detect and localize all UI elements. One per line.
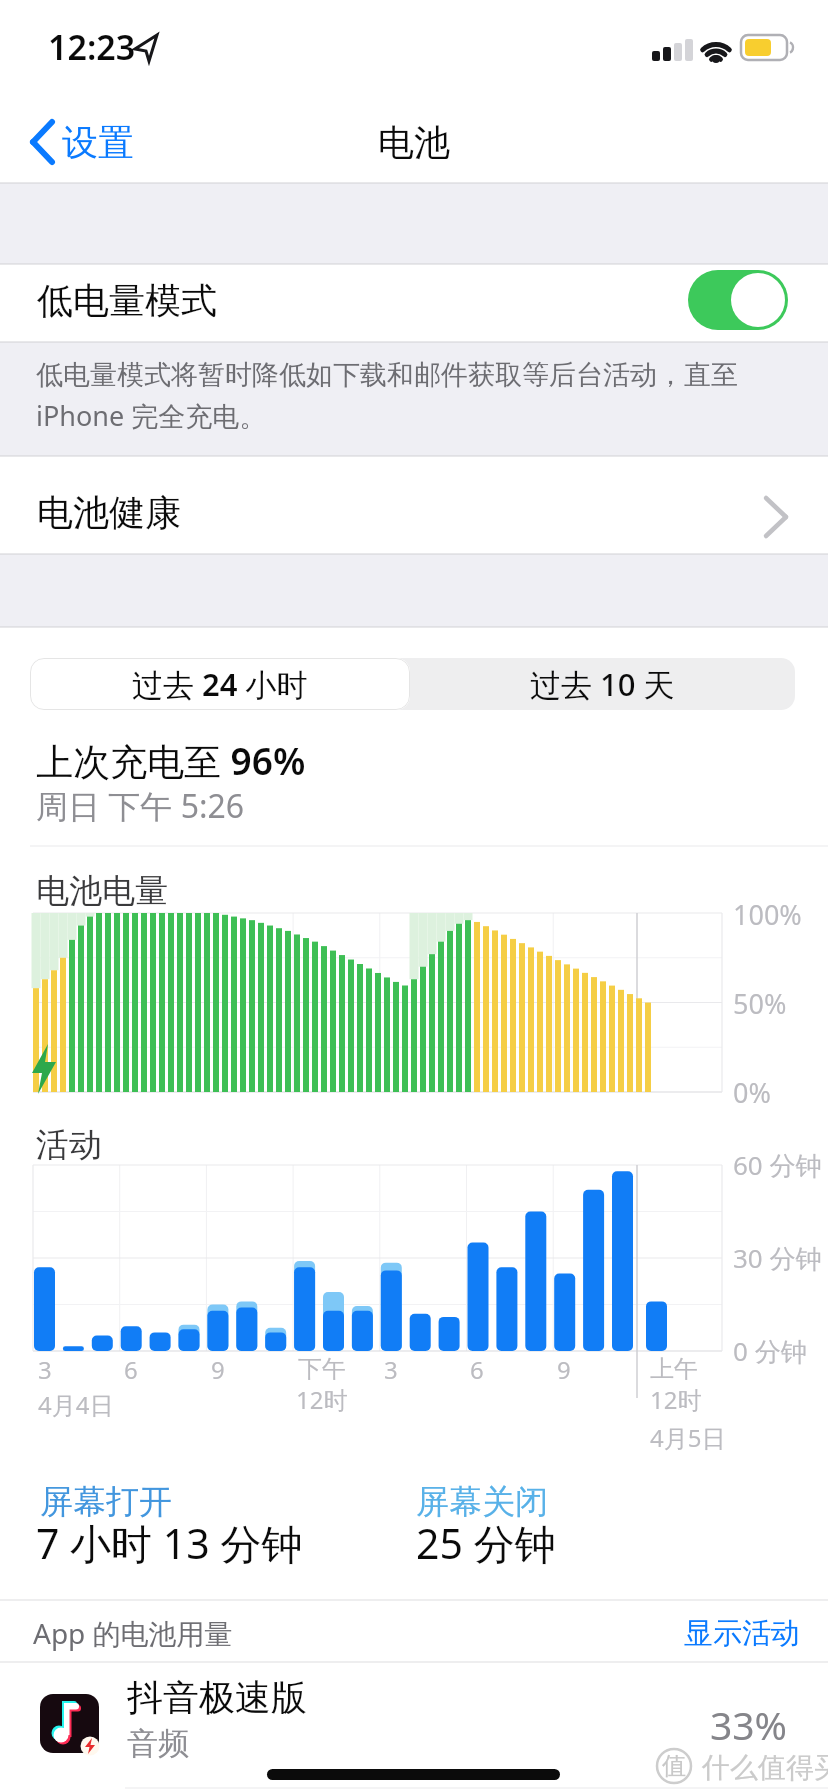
staticText: 33% <box>710 1698 788 1751</box>
staticText: 活动 <box>36 1124 102 1166</box>
staticText: 50% <box>733 985 787 1022</box>
staticText: 3 <box>384 1353 398 1386</box>
button[interactable] <box>0 264 828 342</box>
staticText: 12时 <box>650 1383 702 1416</box>
staticText: 电池电量 <box>36 870 168 912</box>
staticText: App 的电池用量 <box>33 1614 233 1652</box>
staticText: 25 分钟 <box>416 1515 556 1571</box>
staticText: 音频 <box>127 1724 189 1763</box>
staticText: 9 <box>211 1353 225 1386</box>
staticText: 7 小时 13 分钟 <box>36 1515 303 1571</box>
button[interactable] <box>410 658 795 710</box>
staticText: 抖音极速版 <box>127 1675 307 1720</box>
staticText: 4月4日 <box>38 1388 114 1421</box>
staticText: 6 <box>470 1353 484 1386</box>
button[interactable] <box>0 1663 828 1789</box>
staticText: iPhone 完全充电。 <box>36 397 267 434</box>
staticText: 设置 <box>62 120 134 165</box>
staticText: 12时 <box>296 1383 348 1416</box>
staticText: 3 <box>38 1353 52 1386</box>
staticText: 6 <box>124 1353 138 1386</box>
button[interactable] <box>20 112 150 172</box>
staticText: 上次充电至 96% <box>36 735 306 786</box>
button[interactable] <box>688 270 788 330</box>
staticText: 低电量模式将暂时降低如下载和邮件获取等后台活动，直至 <box>36 358 738 392</box>
staticText: 下午 <box>298 1354 346 1384</box>
staticText: 100% <box>733 896 802 933</box>
staticText: 0% <box>733 1074 771 1111</box>
staticText: 过去 24 小时 <box>132 663 308 705</box>
staticText: 60 分钟 <box>733 1147 822 1183</box>
staticText: 屏幕关闭 <box>416 1481 548 1523</box>
staticText: 显示活动 <box>684 1615 800 1652</box>
staticText: 过去 10 天 <box>530 663 675 705</box>
staticText: 低电量模式 <box>37 278 217 323</box>
staticText: 电池 <box>378 120 450 165</box>
staticText: 屏幕打开 <box>40 1481 172 1523</box>
staticText: 12:23 <box>48 24 136 70</box>
staticText: 0 分钟 <box>733 1333 807 1369</box>
button[interactable] <box>0 456 828 554</box>
staticText: 什么值得买 <box>702 1750 828 1785</box>
staticText: 9 <box>557 1353 571 1386</box>
staticText: 电池健康 <box>37 490 181 535</box>
button[interactable] <box>495 1608 800 1658</box>
button[interactable] <box>30 658 410 710</box>
staticText: 上午 <box>650 1354 698 1384</box>
staticText: 4月5日 <box>650 1421 726 1454</box>
staticText: 周日 下午 5:26 <box>36 784 245 828</box>
staticText: 30 分钟 <box>733 1240 822 1276</box>
staticText: 值 <box>662 1751 686 1781</box>
